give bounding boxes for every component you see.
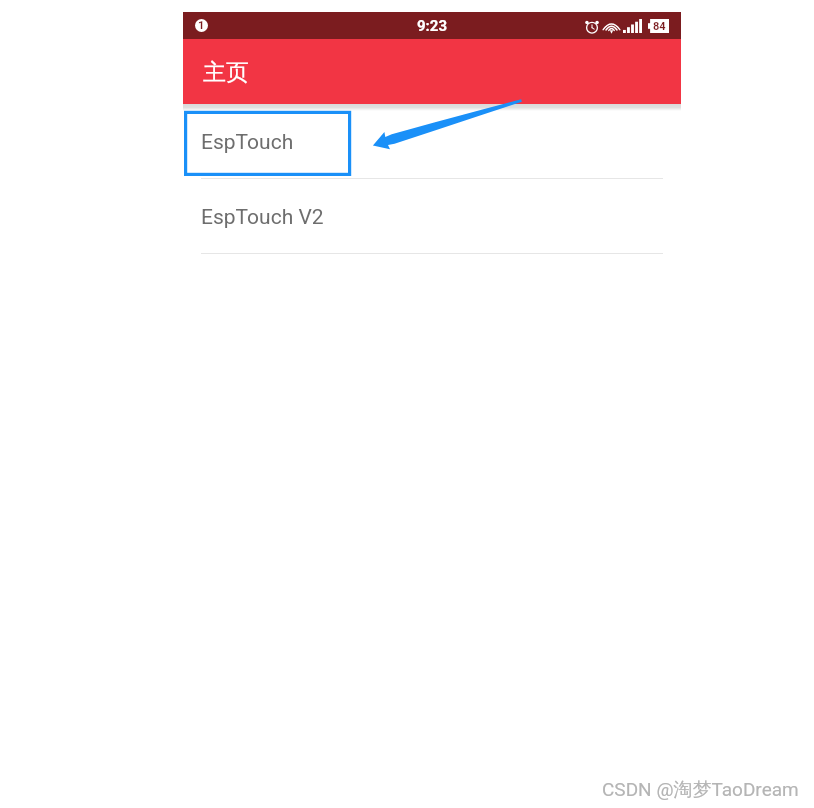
other: Alarm set: [585, 18, 599, 34]
button[interactable]: EspTouch V2: [183, 179, 681, 253]
staticText: CSDN @淘梦TaoDream: [602, 778, 799, 802]
other: Mobile signal full: [623, 19, 642, 33]
staticText: 主页: [203, 58, 249, 87]
button[interactable]: EspTouch: [183, 104, 681, 178]
staticText: 84: [653, 20, 666, 33]
other: Battery 84 percent: [648, 19, 669, 33]
staticText: EspTouch: [201, 130, 294, 155]
other: Wi-Fi connected: [603, 18, 620, 34]
staticText: 9:23: [417, 17, 448, 35]
staticText: EspTouch V2: [201, 205, 324, 230]
staticText: 1: [198, 19, 205, 32]
other: 1 notification: [195, 19, 208, 32]
